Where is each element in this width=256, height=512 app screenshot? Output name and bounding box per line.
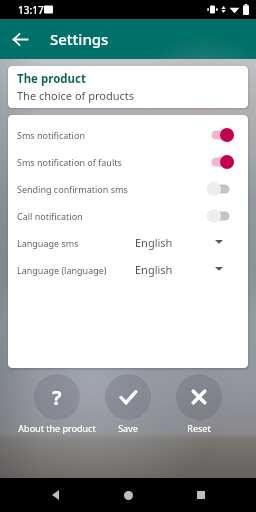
staticText: 13:17 [18, 3, 44, 17]
staticText: Language sms [17, 237, 79, 249]
staticText: The product [17, 71, 86, 87]
staticText: Settings [50, 29, 109, 49]
staticText: Language (language) [17, 264, 107, 276]
button[interactable]: Sms notification of faults [8, 148, 248, 175]
button[interactable]: Back [5, 24, 35, 54]
button[interactable]: Language (language) [8, 256, 248, 283]
staticText: Save [118, 422, 138, 434]
button[interactable]: Recents [184, 478, 218, 512]
staticText: The choice of products [17, 88, 135, 103]
staticText: Reset [187, 422, 211, 434]
staticText: Sms notification of faults [17, 156, 122, 168]
staticText: English [135, 262, 173, 277]
button[interactable]: Back [39, 478, 73, 512]
staticText: Sms notification [17, 129, 85, 141]
button[interactable]: Call notification [8, 202, 248, 229]
button[interactable]: Language sms [8, 229, 248, 256]
staticText: English [135, 235, 173, 250]
staticText: About the product [18, 422, 96, 434]
button[interactable]: Sms notification [8, 121, 248, 148]
button[interactable]: Save [93, 369, 163, 440]
button[interactable]: ? [22, 369, 92, 440]
button[interactable]: The product [8, 66, 248, 108]
button[interactable]: Home [111, 478, 145, 512]
staticText: Sending confirmation sms [17, 183, 128, 195]
button[interactable]: Reset [164, 369, 234, 440]
staticText: Call notification [17, 210, 83, 222]
staticText: ? [52, 384, 62, 411]
button[interactable]: Sending confirmation sms [8, 175, 248, 202]
